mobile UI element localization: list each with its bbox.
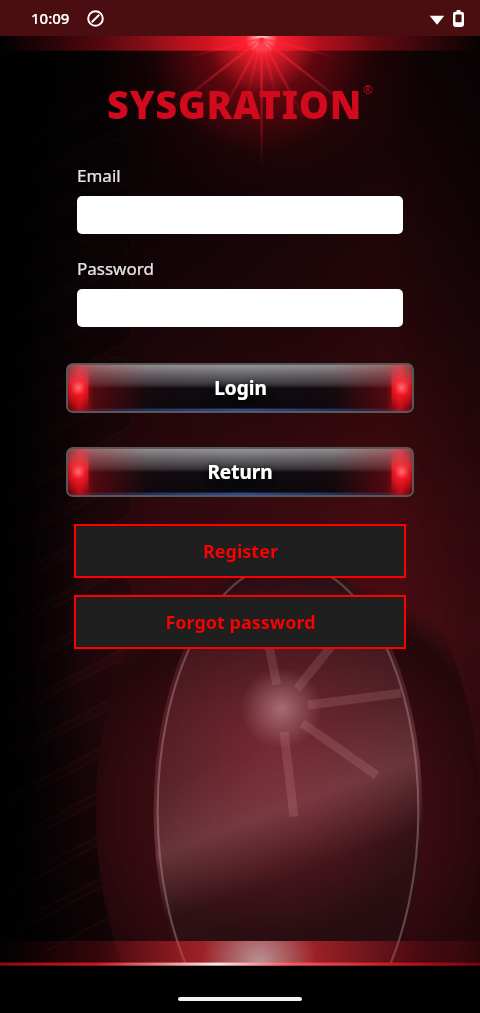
other: Wi-Fi: [429, 11, 445, 27]
button[interactable]: Forgot password: [76, 597, 404, 647]
staticText: Forgot password: [165, 610, 316, 635]
button[interactable]: [77, 289, 403, 327]
other: Battery: [453, 10, 464, 27]
button[interactable]: [77, 196, 403, 234]
staticText: 10:09: [31, 8, 70, 28]
button[interactable]: Return: [68, 449, 412, 495]
staticText: Password: [77, 257, 154, 280]
staticText: Register: [203, 539, 278, 564]
staticText: Return: [207, 459, 273, 485]
staticText: ®: [363, 81, 373, 97]
button[interactable]: Login: [68, 365, 412, 411]
staticText: Email: [77, 164, 121, 187]
button[interactable]: Register: [76, 526, 404, 576]
staticText: Login: [214, 375, 267, 401]
other: Do not disturb: [87, 10, 104, 27]
staticText: SYSGRATION: [107, 78, 363, 130]
